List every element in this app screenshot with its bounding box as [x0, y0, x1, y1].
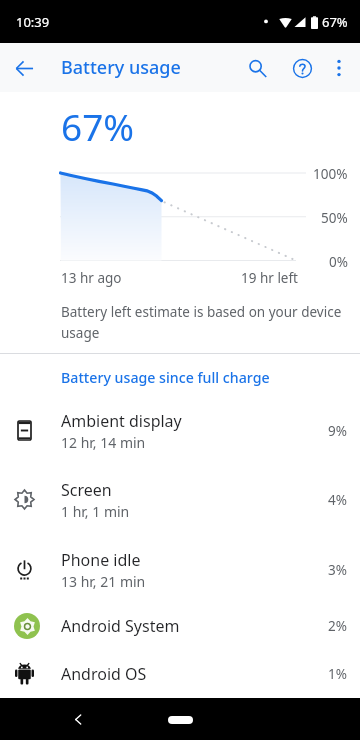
button[interactable]: Ambient display	[0, 396, 360, 465]
staticText: 67%	[61, 101, 135, 151]
button[interactable]: Android OS	[0, 650, 360, 697]
staticText: 3%	[328, 561, 347, 579]
staticText: Android OS	[61, 663, 147, 685]
staticText: 19 hr left	[241, 269, 298, 287]
button[interactable]: More options	[324, 53, 354, 83]
staticText: 9%	[328, 422, 347, 440]
button[interactable]: Battery usage since full charge	[61, 368, 270, 387]
button[interactable]: Screen	[0, 465, 360, 534]
staticText: 13 hr, 21 min	[61, 572, 146, 591]
staticText: 0%	[329, 253, 348, 271]
staticText: Phone idle	[61, 549, 141, 571]
staticText: 1%	[328, 665, 347, 683]
staticText: Android System	[61, 615, 180, 637]
staticText: 10:39	[16, 13, 50, 31]
staticText: 1 hr, 1 min	[61, 502, 130, 521]
button[interactable]: Help	[280, 46, 324, 90]
button[interactable]: Search	[235, 46, 279, 90]
button[interactable]: Android System	[0, 602, 360, 650]
staticText: 13 hr ago	[61, 269, 122, 287]
staticText: Ambient display	[61, 410, 182, 432]
staticText: 50%	[321, 209, 348, 227]
staticText: 67%	[322, 13, 348, 31]
button[interactable]: Back	[60, 701, 96, 737]
staticText: Battery left estimate is based on your d…	[61, 303, 346, 342]
button[interactable]: Back	[0, 44, 48, 92]
button[interactable]: Home	[168, 716, 193, 724]
staticText: Battery usage	[61, 55, 181, 80]
staticText: 12 hr, 14 min	[61, 433, 146, 452]
staticText: 2%	[328, 617, 347, 635]
button[interactable]: Phone idle	[0, 535, 360, 604]
staticText: Screen	[61, 479, 112, 501]
staticText: 4%	[328, 491, 347, 509]
staticText: 100%	[313, 165, 348, 183]
